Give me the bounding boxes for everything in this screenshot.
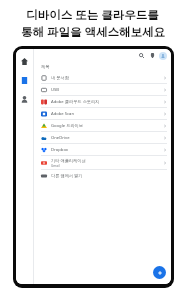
staticText: Gmail bbox=[51, 164, 60, 168]
staticText: Dropbox bbox=[51, 147, 69, 153]
staticText: 제목 bbox=[41, 64, 50, 69]
staticText: Adobe Scan bbox=[51, 111, 75, 117]
staticText: 디바이스 또는 클라우드를 bbox=[26, 7, 159, 23]
staticText: 기타 애플리케이션 bbox=[51, 158, 86, 164]
button[interactable]: 프로필 bbox=[159, 52, 167, 60]
button[interactable]: Adobe 클라우드 스토리지 bbox=[34, 96, 171, 107]
button[interactable]: OneDrive bbox=[34, 132, 171, 143]
staticText: Google 드라이브 bbox=[51, 123, 83, 129]
button[interactable]: 검색 bbox=[137, 51, 146, 60]
button[interactable]: 계정 bbox=[18, 93, 31, 106]
button[interactable]: 다른 앱에서 열기 bbox=[34, 170, 171, 181]
button[interactable]: 알림 bbox=[148, 51, 157, 60]
staticText: 다른 앱에서 열기 bbox=[51, 173, 83, 179]
staticText: USB bbox=[51, 87, 60, 93]
button[interactable]: USB bbox=[34, 84, 171, 95]
button[interactable]: 기타 애플리케이션 bbox=[34, 156, 171, 169]
staticText: 내 문서함 bbox=[51, 75, 69, 81]
staticText: Adobe 클라우드 스토리지 bbox=[51, 99, 100, 105]
button[interactable]: 홈 bbox=[18, 55, 31, 68]
button[interactable]: Dropbox bbox=[34, 144, 171, 155]
button[interactable]: 내 문서함 bbox=[34, 72, 171, 83]
button[interactable]: Adobe Scan bbox=[34, 108, 171, 119]
staticText: 통해 파일을 액세스해보세요 bbox=[21, 24, 165, 40]
button[interactable]: 둘러보기 bbox=[18, 74, 31, 87]
button[interactable]: 추가 bbox=[153, 266, 166, 279]
staticText: OneDrive bbox=[51, 135, 70, 141]
button[interactable]: Google 드라이브 bbox=[34, 120, 171, 131]
